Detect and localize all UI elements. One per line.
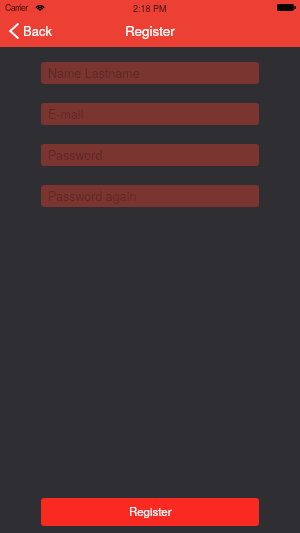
button[interactable]: Name Lastname: [41, 62, 259, 84]
button[interactable]: Register: [41, 498, 259, 526]
staticText: Register: [129, 503, 172, 519]
staticText: Password: [48, 146, 103, 164]
button[interactable]: Back: [0, 19, 62, 42]
staticText: Name Lastname: [48, 64, 140, 82]
staticText: Password again: [48, 187, 137, 205]
button[interactable]: Password: [41, 144, 259, 166]
staticText: 2:18 PM: [133, 2, 167, 15]
other: Back: [9, 23, 19, 39]
staticText: E-mail: [48, 105, 84, 123]
staticText: Carrier: [5, 1, 28, 14]
button[interactable]: E-mail: [41, 103, 259, 125]
button[interactable]: Password again: [41, 185, 259, 207]
staticText: Back: [23, 21, 52, 40]
staticText: Register: [125, 21, 175, 40]
